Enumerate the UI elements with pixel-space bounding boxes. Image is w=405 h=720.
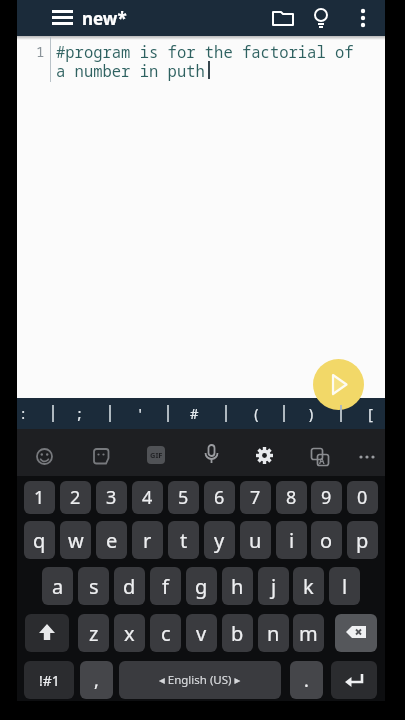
staticText: z (89, 620, 99, 647)
button[interactable]: 3 (96, 481, 127, 514)
button[interactable]: o (311, 521, 342, 559)
button[interactable]: q (24, 521, 55, 559)
button[interactable]: . (290, 661, 323, 699)
button[interactable]: x (114, 614, 145, 652)
button[interactable] (358, 451, 378, 463)
button[interactable]: GIF (147, 446, 165, 464)
staticText: GIF (150, 450, 163, 460)
button[interactable]: z (78, 614, 109, 652)
staticText: g (195, 573, 208, 600)
staticText: 1 (36, 42, 45, 61)
staticText: # (190, 404, 199, 423)
button[interactable] (335, 614, 377, 652)
button[interactable]: h (222, 567, 253, 605)
staticText: ◂ English (US) ▸ (159, 672, 241, 688)
button[interactable]: b (222, 614, 253, 652)
staticText: 3 (106, 485, 117, 510)
button[interactable]: 8 (276, 481, 307, 514)
staticText: l (342, 573, 348, 600)
button[interactable] (93, 448, 110, 465)
button[interactable]: p (347, 521, 378, 559)
staticText: 4 (142, 485, 153, 510)
staticText: . (304, 668, 309, 693)
button[interactable]: f (150, 567, 181, 605)
staticText: 6 (214, 485, 225, 510)
staticText: 7 (250, 485, 261, 510)
staticText: ; (75, 404, 84, 423)
staticText: ) (307, 404, 316, 423)
staticText: 8 (286, 485, 297, 510)
staticText: x (124, 620, 135, 647)
staticText: j (271, 573, 277, 600)
button[interactable] (355, 4, 371, 34)
staticText: !#1 (39, 671, 60, 690)
staticText: : (19, 404, 28, 423)
button[interactable]: c (150, 614, 181, 652)
button[interactable]: j (258, 567, 289, 605)
staticText: 5 (178, 485, 189, 510)
button[interactable] (311, 5, 333, 33)
button[interactable]: g (186, 567, 217, 605)
staticText: 0 (357, 485, 368, 510)
staticText: i (289, 527, 295, 554)
button[interactable] (255, 446, 274, 465)
staticText: b (231, 620, 244, 647)
button[interactable]: d (114, 567, 145, 605)
button[interactable]: , (80, 661, 113, 699)
button[interactable]: t (168, 521, 199, 559)
button[interactable]: i (276, 521, 307, 559)
staticText: c (161, 620, 171, 647)
staticText: ' (136, 404, 145, 423)
staticText: q (33, 527, 46, 554)
button[interactable]: 6 (204, 481, 235, 514)
staticText: , (94, 668, 99, 693)
staticText: o (320, 527, 333, 554)
button[interactable]: !#1 (24, 661, 74, 699)
button[interactable]: e (96, 521, 127, 559)
staticText: w (68, 527, 84, 554)
button[interactable]: m (293, 614, 324, 652)
staticText: y (214, 527, 225, 554)
button[interactable]: r (132, 521, 163, 559)
button[interactable]: u (240, 521, 271, 559)
staticText: d (123, 573, 136, 600)
button[interactable]: v (186, 614, 217, 652)
staticText: e (106, 527, 118, 554)
staticText: ( (252, 404, 261, 423)
staticText: k (303, 573, 314, 600)
button[interactable] (331, 661, 377, 699)
button[interactable]: 9 (311, 481, 342, 514)
staticText: [ (366, 404, 375, 423)
button[interactable]: s (78, 567, 109, 605)
button[interactable]: 0 (347, 481, 378, 514)
staticText: n (267, 620, 280, 647)
button[interactable]: w (60, 521, 91, 559)
button[interactable] (25, 614, 69, 652)
button[interactable] (313, 359, 364, 410)
staticText: new* (82, 7, 127, 30)
button[interactable] (203, 445, 220, 467)
button[interactable] (36, 448, 53, 465)
staticText: #program is for the factorial of a numbe… (56, 41, 354, 81)
button[interactable]: l (329, 567, 360, 605)
button[interactable]: 2 (60, 481, 91, 514)
button[interactable]: a (42, 567, 73, 605)
staticText: t (180, 527, 188, 554)
button[interactable] (270, 5, 296, 31)
staticText: f (162, 573, 169, 600)
button[interactable]: 4 (132, 481, 163, 514)
button[interactable]: n (258, 614, 289, 652)
button[interactable]: 7 (240, 481, 271, 514)
staticText: a (52, 573, 64, 600)
button[interactable] (311, 448, 329, 466)
staticText: p (356, 527, 369, 554)
button[interactable] (17, 398, 385, 429)
button[interactable]: 1 (24, 481, 55, 514)
button[interactable]: k (293, 567, 324, 605)
button[interactable]: ◂ English (US) ▸ (119, 661, 281, 699)
button[interactable] (52, 0, 74, 36)
staticText: u (249, 527, 262, 554)
staticText: 2 (70, 485, 81, 510)
button[interactable]: 5 (168, 481, 199, 514)
button[interactable]: y (204, 521, 235, 559)
